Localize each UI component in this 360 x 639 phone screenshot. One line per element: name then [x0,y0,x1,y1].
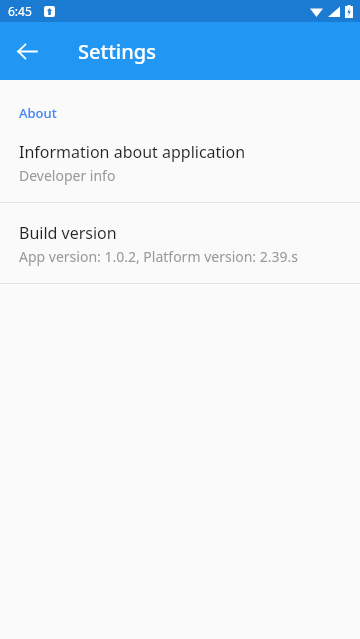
staticText: Developer info [19,166,116,185]
staticText: About [19,104,57,122]
button[interactable]: Back [6,30,48,72]
staticText: Build version [19,222,117,244]
button[interactable]: Build version [0,203,360,283]
staticText: 6:45 [8,3,32,19]
staticText: App version: 1.0.2, Platform version: 2.… [19,247,298,266]
button[interactable]: Information about application [0,122,360,202]
staticText: Information about application [19,141,246,163]
staticText: Settings [78,38,156,65]
